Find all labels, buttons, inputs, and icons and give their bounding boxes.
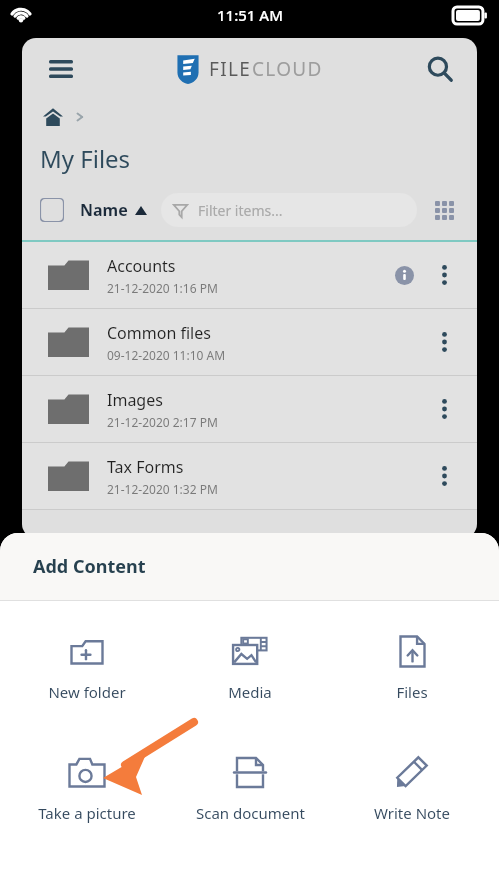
staticText: Tax Forms [107,456,184,478]
button[interactable]: Common files [22,309,477,375]
staticText: Media [228,682,272,702]
staticText: My Files [40,142,131,175]
staticText: CLOUD [252,56,323,82]
button[interactable]: Media [175,631,325,702]
button[interactable]: Filter items... [161,193,417,227]
staticText: 21-12-2020 2:17 PM [107,414,218,430]
staticText: Images [107,389,163,411]
button[interactable]: More options [427,392,461,426]
button[interactable]: More options [427,325,461,359]
staticText: Add Content [33,554,146,579]
button[interactable]: Search [419,48,461,90]
button[interactable]: Name [80,199,147,221]
button[interactable]: More options [427,459,461,493]
staticText: 11:51 AM [217,5,283,25]
staticText: Common files [107,322,211,344]
staticText: Files [396,682,428,702]
button[interactable]: Home [40,104,66,130]
staticText: 21-12-2020 1:16 PM [107,280,218,296]
button[interactable]: Info [389,260,419,290]
staticText: Scan document [196,803,305,823]
button[interactable]: Select all [40,198,64,222]
button[interactable]: Grid view [429,195,459,225]
button[interactable]: Accounts [22,242,477,308]
button[interactable]: Images [22,376,477,442]
button[interactable]: New folder [12,631,162,702]
button[interactable]: Scan document [175,752,325,823]
button[interactable]: Take a picture [12,752,162,823]
staticText: Write Note [374,803,450,823]
staticText: 21-12-2020 1:32 PM [107,481,218,497]
staticText: Filter items... [198,201,283,220]
staticText: New folder [48,682,126,702]
button[interactable]: Tax Forms [22,443,477,509]
button[interactable]: Files [337,631,487,702]
button[interactable]: Menu [40,48,82,90]
button[interactable]: Write Note [337,752,487,823]
staticText: Name [80,199,128,221]
staticText: 09-12-2020 11:10 AM [107,347,226,363]
staticText: FILE [209,56,252,82]
staticText: Accounts [107,255,176,277]
button[interactable]: More options [427,258,461,292]
staticText: Take a picture [38,803,136,823]
